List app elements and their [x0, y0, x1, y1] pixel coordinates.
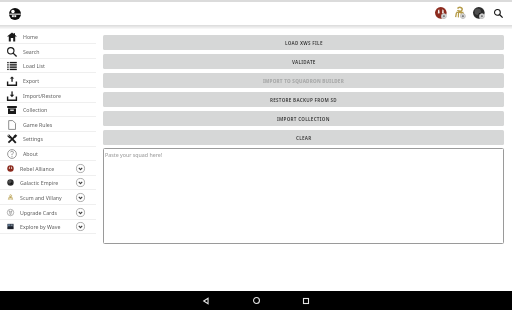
- button[interactable]: Add Scum and Villainy squad: [453, 6, 468, 21]
- staticText: Scum and Villany: [20, 194, 62, 201]
- button[interactable]: Home: [242, 291, 270, 310]
- staticText: Collection: [23, 106, 48, 113]
- button[interactable]: Scum and Villany: [0, 190, 96, 205]
- staticText: Load List: [23, 62, 45, 69]
- button[interactable]: Upgrade Cards: [0, 205, 96, 220]
- staticText: Export: [23, 77, 40, 84]
- button[interactable]: Home: [0, 29, 96, 44]
- staticText: Home: [23, 33, 38, 40]
- staticText: Paste your squad here!: [105, 151, 163, 158]
- button[interactable]: Search: [0, 44, 96, 59]
- button[interactable]: Collection: [0, 102, 96, 117]
- button[interactable]: Game Rules: [0, 117, 96, 132]
- staticText: LOAD XWS FILE: [285, 40, 323, 46]
- button[interactable]: Rebel Alliance: [0, 161, 96, 176]
- button[interactable]: IMPORT TO SQUADRON BUILDER: [103, 73, 504, 88]
- button[interactable]: Recent apps: [292, 291, 320, 310]
- staticText: Rebel Alliance: [20, 165, 55, 172]
- button[interactable]: RESTORE BACKUP FROM SD: [103, 92, 504, 107]
- staticText: Search: [23, 48, 40, 55]
- button[interactable]: Galactic Empire: [0, 175, 96, 190]
- button[interactable]: Explore by Wave: [0, 219, 96, 234]
- staticText: IMPORT TO SQUADRON BUILDER: [263, 78, 344, 84]
- button[interactable]: Paste your squad here!: [103, 148, 504, 244]
- button[interactable]: Add Galactic Empire squad: [472, 6, 487, 21]
- button[interactable]: LOAD XWS FILE: [103, 35, 504, 50]
- button[interactable]: About: [0, 146, 96, 161]
- staticText: RESTORE BACKUP FROM SD: [270, 97, 337, 103]
- staticText: Galactic Empire: [20, 179, 59, 186]
- staticText: Game Rules: [23, 121, 53, 128]
- button[interactable]: Settings: [0, 131, 96, 146]
- button[interactable]: Back: [192, 291, 220, 310]
- button[interactable]: CLEAR: [103, 130, 504, 145]
- button[interactable]: Import/Restore: [0, 88, 96, 103]
- staticText: Import/Restore: [23, 92, 61, 99]
- staticText: CLEAR: [296, 135, 312, 141]
- staticText: VALIDATE: [292, 59, 316, 65]
- staticText: IMPORT COLLECTION: [277, 116, 330, 122]
- staticText: Settings: [23, 135, 43, 142]
- button[interactable]: Export: [0, 73, 96, 88]
- button[interactable]: IMPORT COLLECTION: [103, 111, 504, 126]
- staticText: Upgrade Cards: [20, 209, 57, 216]
- staticText: About: [23, 150, 38, 157]
- button[interactable]: Add Rebel Alliance squad: [434, 6, 449, 21]
- staticText: Explore by Wave: [20, 223, 61, 230]
- button[interactable]: Open navigation drawer: [5, 4, 25, 24]
- button[interactable]: VALIDATE: [103, 54, 504, 69]
- button[interactable]: Search: [491, 6, 506, 21]
- button[interactable]: Load List: [0, 58, 96, 73]
